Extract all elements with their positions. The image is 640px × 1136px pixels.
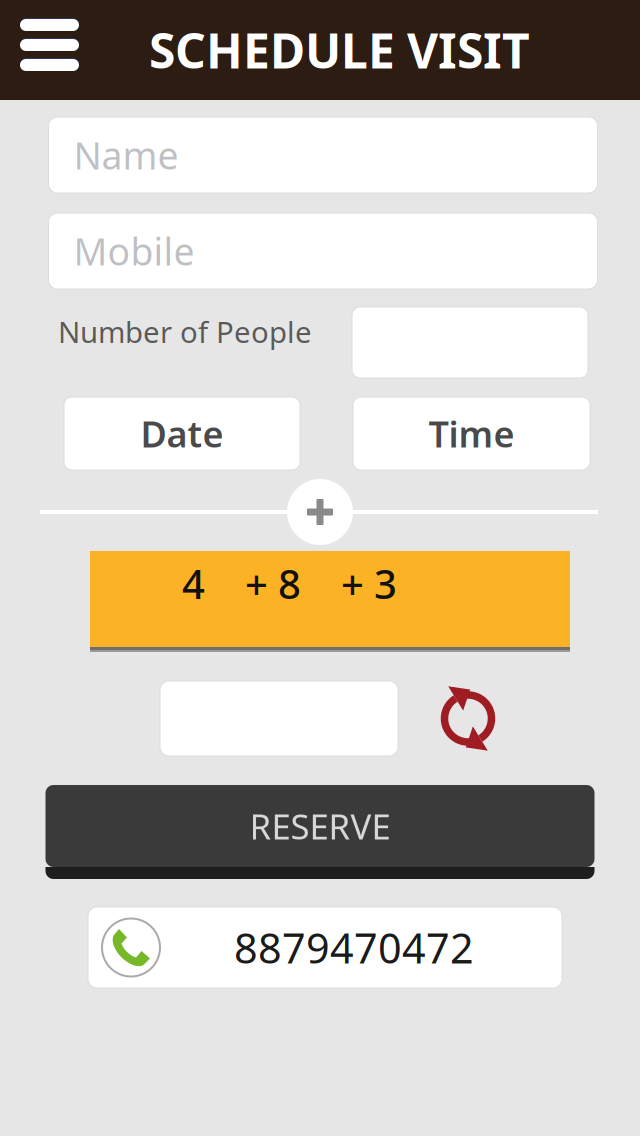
button[interactable]: 8879470472: [88, 907, 562, 988]
button[interactable]: Name: [48, 117, 597, 193]
button[interactable]: Mobile: [48, 213, 597, 289]
staticText: 4 + 8 + 3: [182, 557, 397, 610]
button[interactable]: Menu: [0, 0, 97, 100]
button[interactable]: Time: [353, 397, 590, 470]
staticText: SCHEDULE VISIT: [149, 18, 530, 82]
staticText: Name: [73, 130, 178, 180]
button[interactable]: Refresh captcha: [426, 681, 510, 755]
button[interactable]: Captcha answer: [160, 681, 398, 756]
button[interactable]: Add: [287, 479, 353, 545]
button[interactable]: RESERVE: [45, 785, 594, 879]
staticText: Date: [140, 410, 223, 457]
button[interactable]: Number of People: [352, 307, 588, 378]
staticText: 8879470472: [234, 920, 474, 975]
button[interactable]: Date: [64, 397, 300, 470]
staticText: Number of People: [58, 312, 312, 351]
staticText: Mobile: [73, 226, 194, 276]
staticText: Time: [428, 410, 514, 457]
staticText: RESERVE: [249, 803, 390, 849]
